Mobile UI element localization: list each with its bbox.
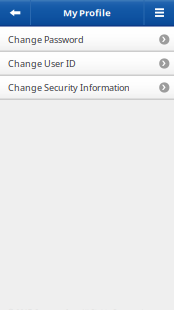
staticText: Change User ID bbox=[8, 57, 76, 70]
staticText: Change Security Information bbox=[8, 81, 130, 94]
button[interactable]: Change Security Information bbox=[0, 76, 174, 100]
button[interactable]: Menu bbox=[145, 0, 174, 25]
button[interactable]: Back bbox=[0, 0, 30, 25]
button[interactable]: Change Password bbox=[0, 28, 174, 52]
staticText: Change Password bbox=[8, 33, 84, 46]
staticText: My Profile bbox=[63, 6, 111, 19]
button[interactable]: Change User ID bbox=[0, 52, 174, 76]
